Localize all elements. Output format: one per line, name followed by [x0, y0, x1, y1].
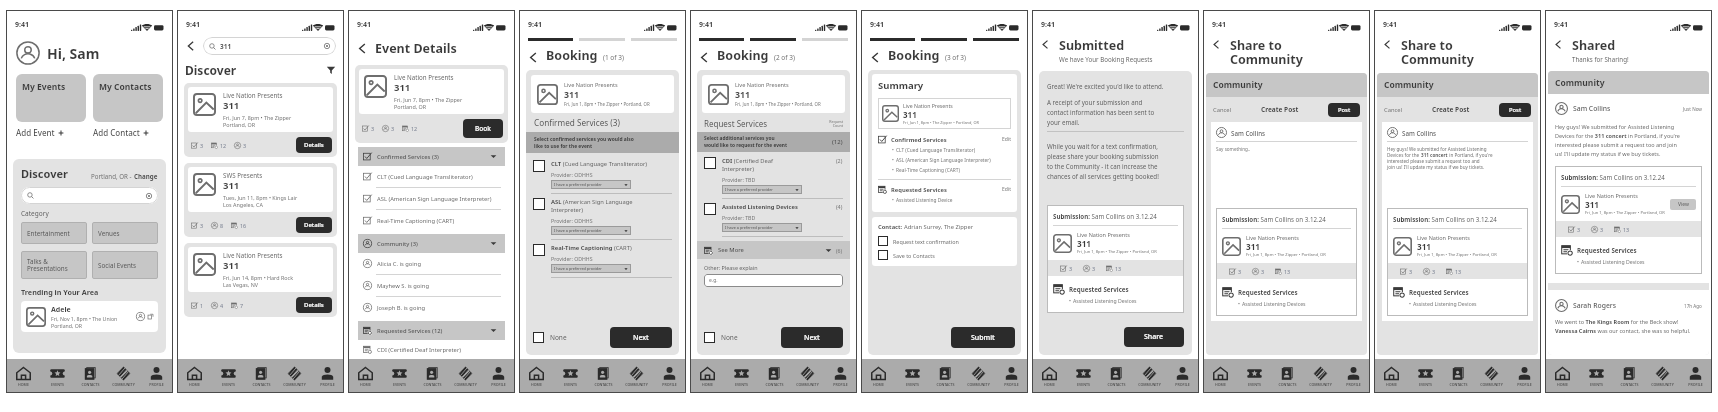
button[interactable]: Share — [1124, 327, 1184, 347]
button[interactable]: EVENTS — [211, 359, 245, 393]
button[interactable]: I have a preferred provider — [551, 180, 631, 189]
button[interactable]: HOME — [519, 359, 553, 393]
button[interactable]: Community (3) — [363, 234, 497, 253]
button[interactable]: Details — [296, 297, 332, 313]
button[interactable]: CONTACTS — [74, 359, 107, 393]
button[interactable]: CLT (Cued Language Transliterator) — [363, 166, 501, 187]
button[interactable]: PROFILE — [1337, 359, 1370, 393]
button[interactable]: CONTACTS — [929, 359, 962, 393]
button[interactable]: CONTACTS — [1442, 359, 1475, 393]
button[interactable]: EVENTS — [724, 359, 758, 393]
button[interactable]: PROFILE — [1679, 359, 1712, 393]
button[interactable]: CONTACTS — [1271, 359, 1304, 393]
button[interactable]: Back — [1553, 39, 1566, 50]
button[interactable]: Back — [185, 40, 197, 52]
button[interactable]: COMMUNITY — [449, 359, 482, 393]
button[interactable]: PROFILE — [482, 359, 515, 393]
button[interactable]: ASL (American Sign Language Interpreter) — [363, 188, 501, 209]
button[interactable]: Confirmed Services (3) — [363, 147, 497, 166]
button[interactable]: CONTACTS — [1100, 359, 1133, 393]
button[interactable]: Next — [781, 327, 843, 348]
button[interactable] — [533, 160, 545, 172]
button[interactable]: EVENTS — [1066, 359, 1100, 393]
button[interactable]: View — [1670, 199, 1696, 210]
button[interactable]: EVENTS — [1579, 359, 1613, 393]
button[interactable]: Venues — [92, 222, 158, 244]
button[interactable]: CONTACTS — [416, 359, 449, 393]
button[interactable] — [704, 157, 716, 169]
button[interactable] — [21, 187, 158, 204]
button[interactable]: COMMUNITY — [107, 359, 140, 393]
button[interactable]: HOME — [690, 359, 724, 393]
button[interactable]: HOME — [1545, 359, 1579, 393]
button[interactable]: Edit — [1002, 136, 1011, 143]
button[interactable]: EVENTS — [553, 359, 587, 393]
button[interactable]: I have a preferred provider — [551, 264, 631, 273]
button[interactable]: HOME — [861, 359, 895, 393]
button[interactable]: Cancel — [1213, 106, 1232, 114]
button[interactable]: EVENTS — [382, 359, 416, 393]
button[interactable]: Submit — [951, 327, 1015, 348]
button[interactable]: Book — [463, 119, 503, 138]
button[interactable]: Back — [527, 51, 540, 64]
button[interactable]: EVENTS — [1237, 359, 1271, 393]
button[interactable]: COMMUNITY — [962, 359, 995, 393]
button[interactable] — [704, 203, 716, 215]
button[interactable]: PROFILE — [1166, 359, 1199, 393]
button[interactable]: I have a preferred provider — [551, 226, 631, 235]
button[interactable]: EVENTS — [1408, 359, 1442, 393]
button[interactable]: CONTACTS — [1613, 359, 1646, 393]
button[interactable] — [533, 332, 544, 343]
button[interactable]: EVENTS — [40, 359, 74, 393]
button[interactable]: My Contacts — [93, 74, 163, 122]
button[interactable] — [878, 250, 888, 260]
button[interactable]: Adele — [21, 301, 158, 332]
button[interactable]: PROFILE — [653, 359, 686, 393]
button[interactable]: HOME — [1032, 359, 1066, 393]
button[interactable]: CDI (Certified Deaf Interpreter) — [363, 340, 501, 359]
button[interactable]: Talks & Presentations — [21, 251, 87, 279]
button[interactable]: PROFILE — [824, 359, 857, 393]
button[interactable]: EVENTS — [895, 359, 929, 393]
button[interactable]: My Events — [16, 74, 86, 122]
button[interactable]: PROFILE — [140, 359, 173, 393]
button[interactable]: Cancel — [1384, 106, 1403, 114]
button[interactable]: Joseph B. is going — [363, 297, 501, 318]
button[interactable]: I have a preferred provider — [722, 185, 802, 194]
button[interactable] — [533, 244, 545, 256]
button[interactable]: Alicia C. is going — [363, 253, 501, 274]
button[interactable]: HOME — [1374, 359, 1408, 393]
button[interactable]: CONTACTS — [758, 359, 791, 393]
button[interactable]: Requested Services (12) — [363, 321, 497, 340]
button[interactable]: PROFILE — [311, 359, 344, 393]
button[interactable]: HOME — [177, 359, 211, 393]
button[interactable]: COMMUNITY — [620, 359, 653, 393]
button[interactable]: Edit — [1002, 186, 1011, 193]
button[interactable]: Social Events — [92, 251, 158, 279]
button[interactable]: Back — [356, 42, 369, 55]
button[interactable]: PROFILE — [1508, 359, 1541, 393]
button[interactable]: COMMUNITY — [278, 359, 311, 393]
button[interactable]: Back — [1040, 39, 1053, 50]
button[interactable]: Back — [698, 51, 711, 64]
button[interactable]: CONTACTS — [587, 359, 620, 393]
button[interactable]: Back — [869, 51, 882, 64]
button[interactable]: Back — [1382, 39, 1395, 50]
button[interactable]: COMMUNITY — [1646, 359, 1679, 393]
button[interactable]: I have a preferred provider — [722, 223, 802, 232]
button[interactable] — [704, 332, 715, 343]
button[interactable]: Add Contact — [93, 127, 163, 138]
button[interactable]: COMMUNITY — [791, 359, 824, 393]
button[interactable] — [533, 198, 545, 210]
button[interactable]: Entertainment — [21, 222, 87, 244]
button[interactable]: See More — [704, 241, 843, 259]
button[interactable]: Change — [134, 172, 158, 180]
button[interactable]: e.g. — [704, 274, 843, 287]
button[interactable]: 311 — [203, 37, 336, 55]
button[interactable]: COMMUNITY — [1133, 359, 1166, 393]
button[interactable]: HOME — [1203, 359, 1237, 393]
button[interactable]: COMMUNITY — [1304, 359, 1337, 393]
button[interactable] — [878, 236, 888, 246]
button[interactable]: Details — [296, 137, 332, 153]
button[interactable]: Add Event — [16, 127, 86, 138]
